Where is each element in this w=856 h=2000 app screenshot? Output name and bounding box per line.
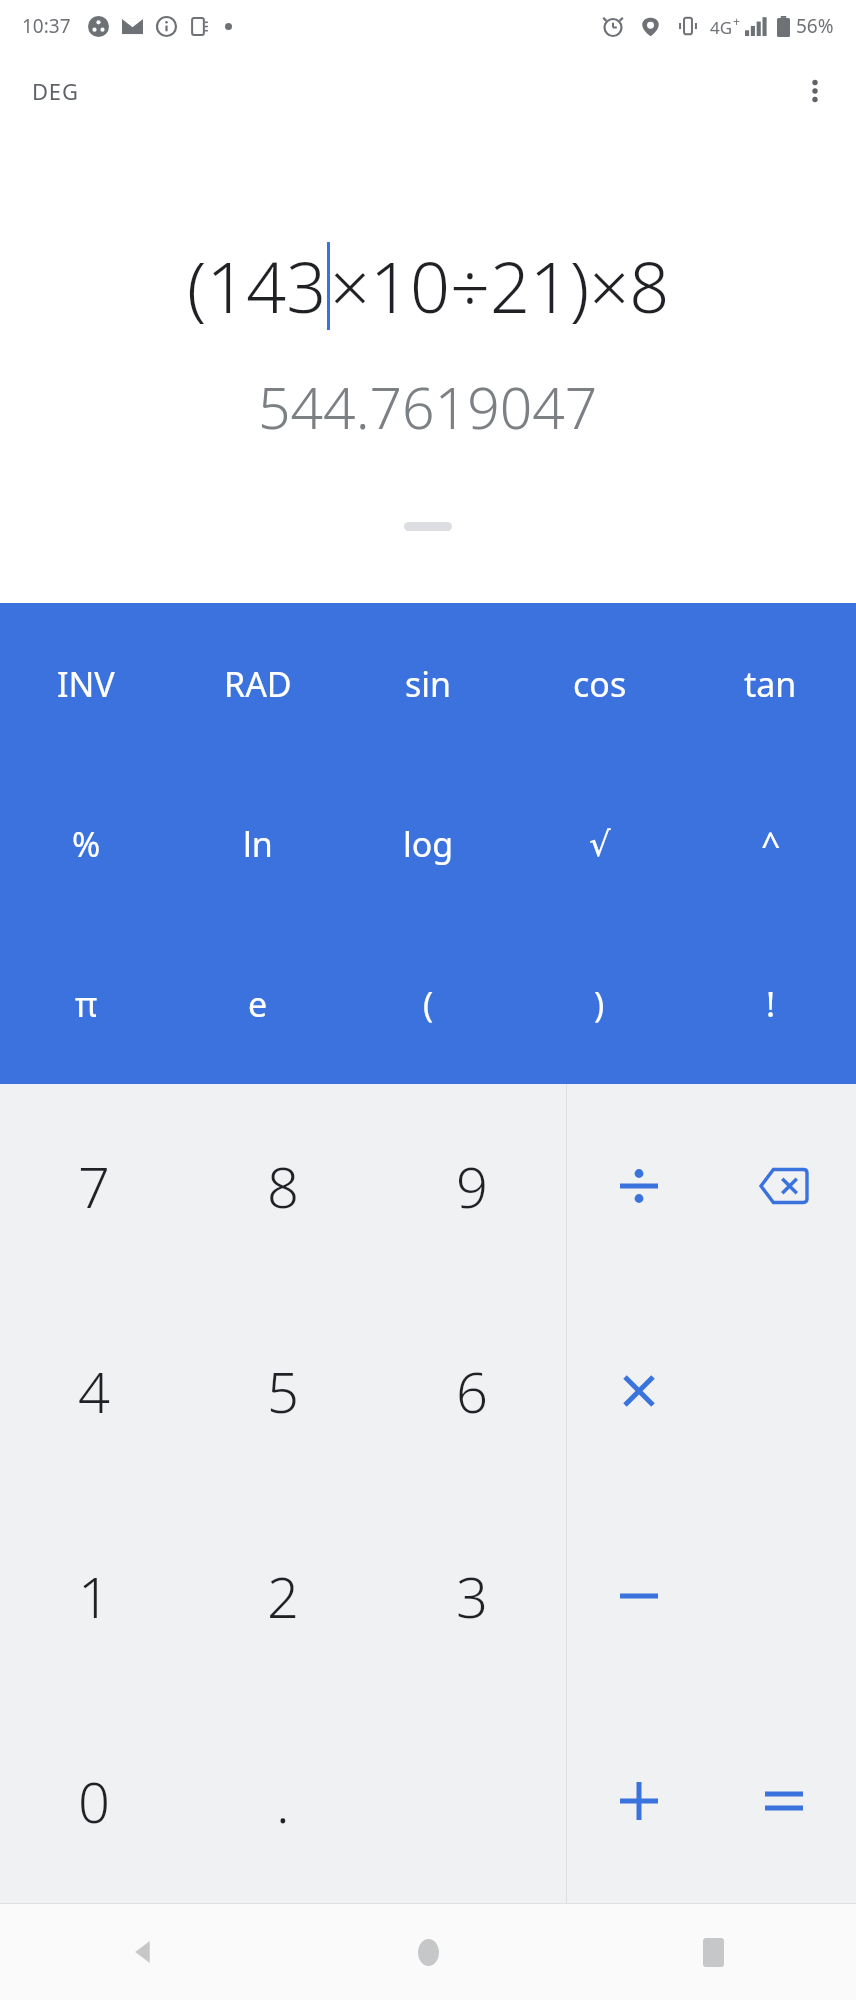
staticText: 4G: [710, 16, 733, 39]
button[interactable]: e: [172, 924, 343, 1084]
button[interactable]: ln: [172, 764, 343, 924]
staticText: 544.7619047: [258, 368, 598, 446]
staticText: ×10÷21)×8: [330, 238, 670, 333]
button[interactable]: 8: [188, 1084, 377, 1288]
button[interactable]: Equals: [711, 1698, 856, 1903]
staticText: 9: [456, 1148, 488, 1224]
button[interactable]: log: [343, 764, 514, 924]
button[interactable]: cos: [514, 603, 685, 764]
button[interactable]: sin: [343, 603, 514, 764]
staticText: 8: [267, 1148, 299, 1224]
staticText: %: [72, 821, 101, 867]
staticText: 7: [78, 1148, 110, 1224]
button[interactable]: 5: [188, 1288, 377, 1493]
button[interactable]: 4: [0, 1288, 188, 1493]
button[interactable]: (: [343, 924, 514, 1084]
staticText: (143: [187, 238, 327, 333]
button[interactable]: 3: [377, 1493, 566, 1698]
button[interactable]: Subtract: [567, 1493, 711, 1698]
staticText: 1: [78, 1558, 110, 1634]
button[interactable]: !: [685, 924, 856, 1084]
staticText: 4: [78, 1353, 110, 1429]
button[interactable]: Backspace: [711, 1084, 856, 1288]
button[interactable]: Add: [567, 1698, 711, 1903]
staticText: cos: [573, 661, 627, 707]
staticText: 6: [456, 1353, 488, 1429]
button[interactable]: More options: [786, 62, 844, 120]
button[interactable]: RAD: [172, 603, 343, 764]
staticText: e: [248, 981, 268, 1027]
staticText: ): [594, 981, 605, 1027]
button[interactable]: Back: [0, 1904, 286, 2000]
button[interactable]: π: [0, 924, 172, 1084]
staticText: sin: [405, 661, 452, 707]
staticText: 10:37: [22, 13, 71, 39]
staticText: π: [75, 981, 98, 1027]
staticText: 5: [267, 1353, 299, 1429]
button[interactable]: Expand: [404, 522, 452, 531]
staticText: log: [403, 821, 454, 867]
button[interactable]: ^: [685, 764, 856, 924]
staticText: !: [766, 981, 776, 1027]
button[interactable]: ): [514, 924, 685, 1084]
button[interactable]: Recent apps: [571, 1904, 856, 2000]
staticText: +: [733, 13, 740, 29]
button[interactable]: %: [0, 764, 172, 924]
staticText: DEG: [32, 76, 79, 106]
button[interactable]: 6: [377, 1288, 566, 1493]
staticText: √: [589, 824, 611, 864]
staticText: 56%: [796, 13, 834, 39]
button[interactable]: .: [188, 1698, 377, 1903]
staticText: ln: [243, 821, 273, 867]
staticText: INV: [57, 661, 115, 707]
button[interactable]: Home: [286, 1904, 571, 2000]
staticText: .: [276, 1763, 290, 1839]
staticText: ^: [761, 821, 781, 867]
staticText: 0: [78, 1763, 110, 1839]
button[interactable]: 7: [0, 1084, 188, 1288]
button[interactable]: Divide: [567, 1084, 711, 1288]
button[interactable]: Multiply: [567, 1288, 711, 1493]
staticText: (: [423, 981, 434, 1027]
button[interactable]: 2: [188, 1493, 377, 1698]
button[interactable]: 0: [0, 1698, 188, 1903]
staticText: RAD: [224, 661, 292, 707]
button[interactable]: INV: [0, 603, 172, 764]
button[interactable]: 1: [0, 1493, 188, 1698]
button[interactable]: DEG: [16, 66, 95, 116]
staticText: 2: [267, 1558, 299, 1634]
staticText: 3: [456, 1558, 488, 1634]
button[interactable]: tan: [685, 603, 856, 764]
button[interactable]: √: [514, 764, 685, 924]
staticText: tan: [744, 661, 797, 707]
button[interactable]: 9: [377, 1084, 566, 1288]
